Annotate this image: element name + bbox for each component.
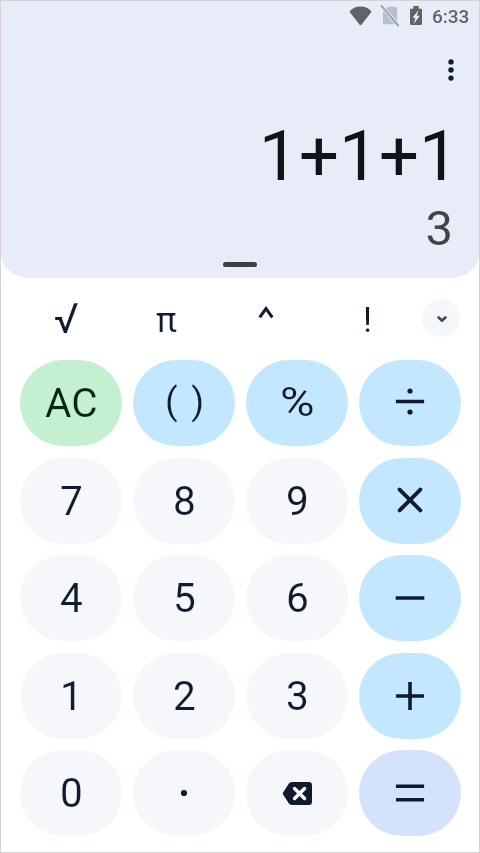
staticText: 0 [60, 769, 83, 816]
staticText: 6 [286, 574, 309, 621]
button[interactable]: Add [359, 653, 461, 739]
staticText: AC [45, 379, 98, 426]
button[interactable]: Percent [246, 360, 348, 446]
staticText: 1 [60, 672, 83, 719]
button[interactable]: 1 [20, 653, 122, 739]
button[interactable]: Backspace [246, 750, 348, 836]
button[interactable]: 3 [246, 653, 348, 739]
staticText: % [280, 379, 315, 427]
staticText: 7 [60, 477, 83, 524]
button[interactable]: Parentheses [133, 360, 235, 446]
button[interactable]: Show history [223, 262, 257, 267]
button[interactable]: 8 [133, 458, 235, 544]
staticText: 3 [286, 672, 309, 719]
button[interactable]: Subtract [359, 555, 461, 641]
staticText: π [156, 300, 177, 341]
button[interactable]: Equals [359, 750, 461, 836]
staticText: 1+1+1 [0, 114, 459, 197]
staticText: 6:33 [432, 5, 470, 27]
button[interactable]: 7 [20, 458, 122, 544]
button[interactable]: 5 [133, 555, 235, 641]
staticText: 4 [60, 574, 83, 621]
button[interactable]: Pi [138, 290, 194, 346]
button[interactable]: Decimal point [133, 750, 235, 836]
staticText: ! [363, 300, 373, 341]
button[interactable]: 9 [246, 458, 348, 544]
staticText: 8 [173, 477, 196, 524]
staticText: ( ) [165, 380, 207, 423]
button[interactable]: 4 [20, 555, 122, 641]
button[interactable]: Multiply [359, 458, 461, 544]
button[interactable]: More options [432, 51, 469, 88]
button[interactable]: 2 [133, 653, 235, 739]
button[interactable]: Divide [359, 360, 461, 446]
staticText: √ [54, 294, 80, 343]
button[interactable]: Square root [39, 290, 95, 346]
button[interactable]: Power [238, 290, 294, 346]
staticText: 5 [173, 574, 196, 621]
button[interactable]: All clear [20, 360, 122, 446]
staticText: 9 [286, 477, 309, 524]
staticText: 2 [173, 672, 196, 719]
button[interactable]: Factorial [340, 290, 396, 346]
button[interactable]: 6 [246, 555, 348, 641]
button[interactable]: 0 [20, 750, 122, 836]
button[interactable]: Collapse advanced pad [422, 299, 460, 337]
staticText: 3 [0, 200, 453, 257]
